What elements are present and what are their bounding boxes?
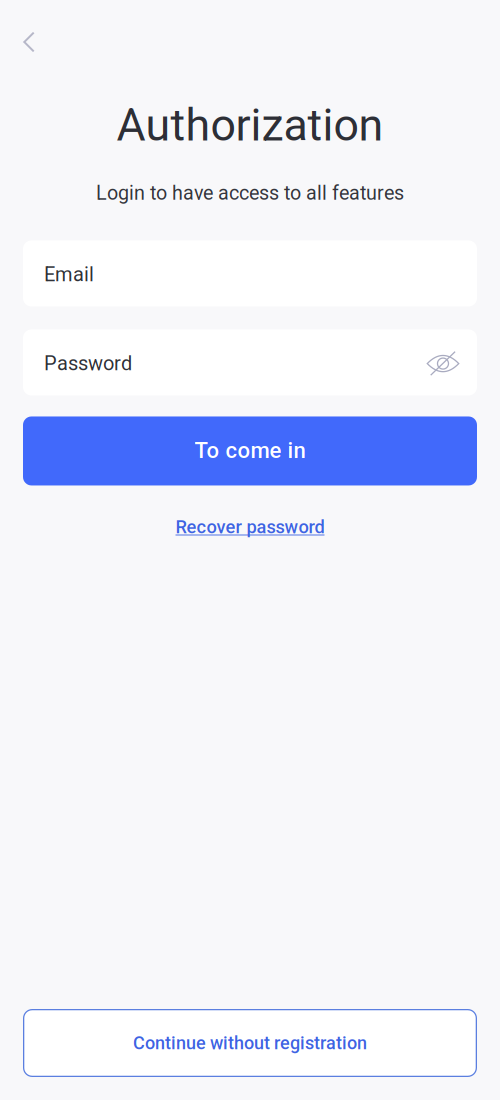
staticText: Login to have access to all features	[96, 181, 404, 204]
button[interactable]: Email	[23, 240, 477, 306]
button[interactable]: Password	[23, 329, 477, 395]
staticText: Recover password	[175, 516, 324, 538]
button[interactable]: Recover password	[175, 509, 324, 544]
staticText: Authorization	[116, 99, 383, 151]
staticText: Continue without registration	[133, 1032, 367, 1054]
button[interactable]: Back	[8, 20, 50, 64]
staticText: To come in	[194, 437, 305, 463]
button[interactable]: Show password	[423, 343, 463, 383]
button[interactable]: To come in	[23, 416, 477, 485]
staticText: Email	[44, 263, 94, 286]
button[interactable]: Continue without registration	[23, 1009, 477, 1077]
staticText: Password	[44, 352, 132, 375]
